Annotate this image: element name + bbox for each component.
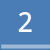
staticText: 2 (17, 4, 32, 39)
